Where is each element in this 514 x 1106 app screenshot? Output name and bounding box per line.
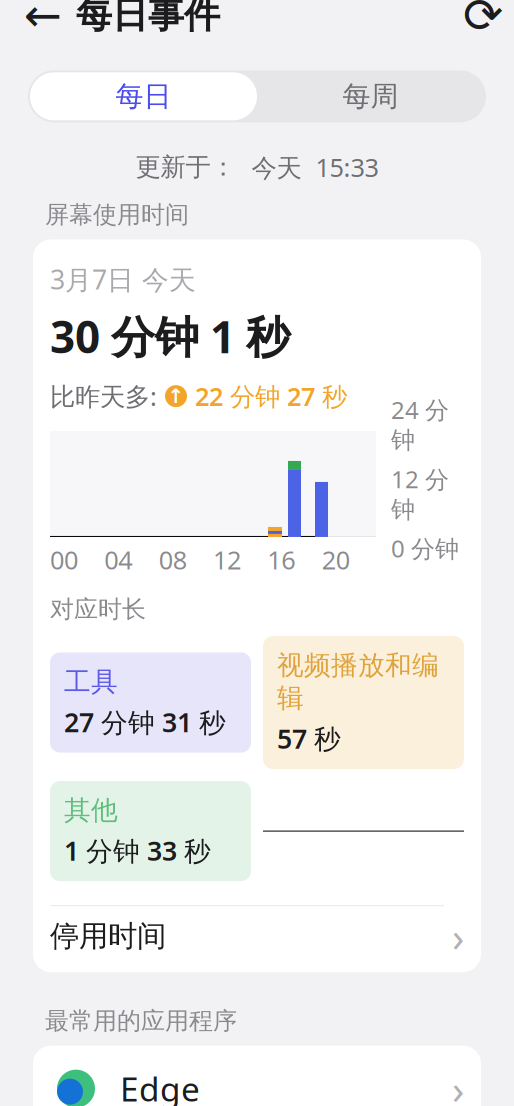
staticText: 3月7日 今天 bbox=[50, 261, 196, 297]
staticText: 12 bbox=[213, 543, 241, 577]
staticText: 04 bbox=[104, 543, 132, 577]
staticText: 屏幕使用时间 bbox=[45, 200, 189, 229]
staticText: 更新于： bbox=[135, 152, 235, 183]
staticText: ← bbox=[24, 0, 62, 41]
staticText: 30 分钟 1 秒 bbox=[50, 307, 290, 365]
staticText: 视频播放和编辑 bbox=[277, 649, 439, 715]
staticText: 24 分钟 bbox=[391, 394, 449, 455]
staticText: 工具 bbox=[64, 665, 118, 698]
staticText: 其他 bbox=[64, 794, 118, 827]
button[interactable]: 每日 bbox=[30, 72, 257, 120]
staticText: 22 分钟 27 秒 bbox=[195, 379, 347, 413]
staticText: 08 bbox=[159, 543, 187, 577]
staticText: › bbox=[452, 1062, 464, 1106]
staticText: 比昨天多: bbox=[50, 379, 157, 413]
staticText: 12 分钟 bbox=[391, 463, 449, 524]
staticText: 每日事件 bbox=[76, 0, 220, 37]
button[interactable]: Back bbox=[16, 0, 70, 42]
staticText: 每日 bbox=[115, 79, 171, 114]
staticText: 57 秒 bbox=[277, 721, 341, 756]
staticText: ↑ bbox=[167, 385, 184, 407]
button[interactable]: 每周 bbox=[257, 72, 484, 120]
button[interactable]: Edge bbox=[33, 1046, 481, 1106]
staticText: 27 分钟 31 秒 bbox=[64, 704, 226, 740]
staticText: Edge bbox=[120, 1066, 200, 1106]
staticText: 对应时长 bbox=[50, 595, 146, 624]
staticText: 今天 15:33 bbox=[251, 150, 378, 184]
button[interactable]: Refresh bbox=[456, 0, 510, 42]
staticText: 00 bbox=[50, 543, 78, 577]
staticText: 停用时间 bbox=[50, 918, 166, 954]
staticText: 每周 bbox=[342, 79, 398, 114]
button[interactable]: 停用时间 bbox=[50, 906, 464, 966]
staticText: 20 bbox=[322, 543, 350, 577]
staticText: 16 bbox=[267, 543, 295, 577]
staticText: 0 分钟 bbox=[391, 532, 459, 564]
staticText: ⟳ bbox=[463, 0, 503, 43]
staticText: › bbox=[452, 910, 464, 963]
staticText: 1 分钟 33 秒 bbox=[64, 833, 211, 868]
staticText: 最常用的应用程序 bbox=[45, 1006, 237, 1036]
